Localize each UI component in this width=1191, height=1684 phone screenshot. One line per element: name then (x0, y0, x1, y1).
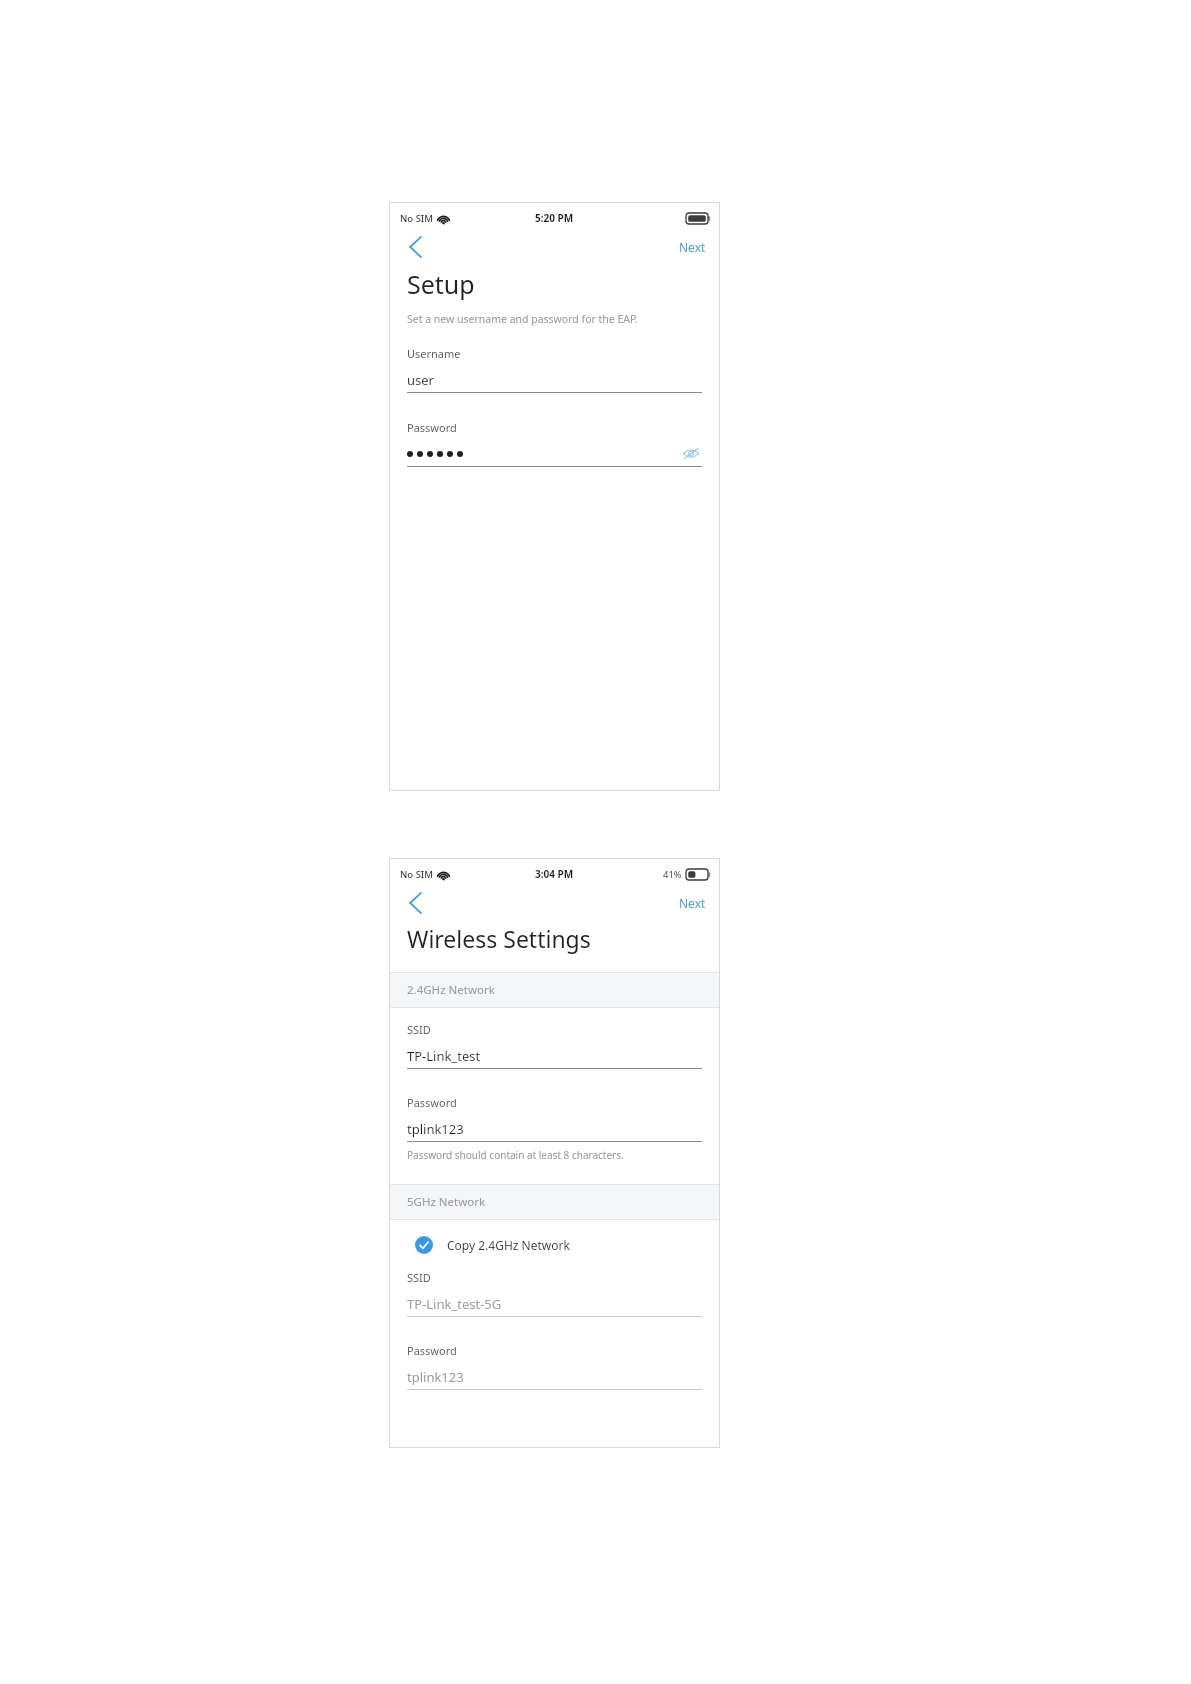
button[interactable]: Show password (680, 444, 702, 463)
staticText: Next (679, 895, 706, 911)
staticText: Username (407, 346, 461, 361)
staticText: TP-Link_test-5G (407, 1295, 502, 1313)
button[interactable]: Back (395, 230, 435, 264)
staticText: Copy 2.4GHz Network (447, 1237, 570, 1253)
staticText: 41% (663, 868, 682, 881)
button[interactable]: Username (389, 346, 720, 393)
staticText: SSID (407, 1270, 431, 1285)
staticText: Set a new username and password for the … (407, 312, 638, 326)
staticText: Wireless Settings (407, 923, 591, 954)
button[interactable]: Password (389, 1343, 720, 1390)
button[interactable]: Password (389, 1095, 720, 1142)
staticText: Setup (407, 267, 475, 301)
staticText: Password (407, 1343, 457, 1358)
button[interactable]: Next (665, 233, 720, 261)
staticText: Password (407, 420, 457, 435)
staticText: user (407, 371, 434, 389)
button[interactable]: Next (665, 889, 720, 917)
staticText: tplink123 (407, 1120, 464, 1138)
button[interactable]: Password (389, 420, 720, 467)
staticText: Password (407, 1095, 457, 1110)
button[interactable]: SSID (389, 1022, 720, 1069)
button[interactable]: SSID (389, 1270, 720, 1317)
staticText: 2.4GHz Network (407, 982, 495, 998)
staticText: 5GHz Network (407, 1194, 486, 1210)
staticText: 3:04 PM (535, 867, 574, 881)
staticText: 5:20 PM (535, 211, 574, 225)
staticText: SSID (407, 1022, 431, 1037)
button[interactable]: Copy 2.4GHz Network (389, 1226, 720, 1264)
staticText: tplink123 (407, 1368, 464, 1386)
staticText: TP-Link_test (407, 1047, 481, 1065)
staticText: No SIM (400, 212, 433, 225)
staticText: Password should contain at least 8 chara… (407, 1148, 624, 1162)
staticText: Next (679, 239, 706, 255)
staticText: No SIM (400, 868, 433, 881)
button[interactable]: Back (395, 886, 435, 920)
